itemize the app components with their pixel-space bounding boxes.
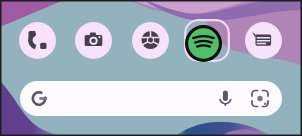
button[interactable]: Phone [19,22,56,59]
button[interactable]: Messages [245,22,282,59]
button[interactable]: Spotify [184,19,230,62]
button[interactable]: Chrome [132,22,169,59]
button[interactable]: Camera [75,22,112,59]
button[interactable]: Search [20,81,282,116]
